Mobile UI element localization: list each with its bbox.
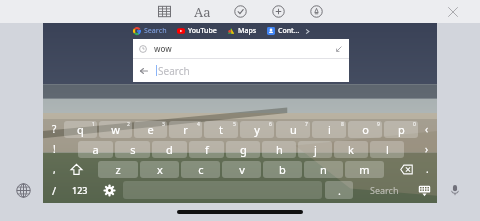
button[interactable]: j: [298, 141, 332, 158]
button[interactable]: o: [348, 121, 382, 138]
staticText: Search: [158, 64, 190, 78]
button[interactable]: Checklist: [227, 0, 253, 23]
button[interactable]: x: [140, 161, 179, 178]
staticText: d: [166, 142, 173, 157]
button[interactable]: d: [152, 141, 187, 158]
staticText: l: [386, 142, 389, 157]
button[interactable]: Close: [442, 1, 464, 23]
button[interactable]: /: [45, 179, 63, 201]
staticText: j: [314, 142, 317, 157]
staticText: ›: [425, 142, 429, 156]
button[interactable]: Maps: [227, 26, 257, 36]
staticText: k: [348, 142, 354, 157]
button[interactable]: Search: [133, 59, 349, 82]
button[interactable]: b: [263, 161, 302, 178]
button[interactable]: Markup: [303, 0, 329, 23]
staticText: n: [320, 162, 327, 177]
staticText: Maps: [238, 26, 257, 36]
button[interactable]: ›: [419, 139, 435, 159]
button[interactable]: Settings: [97, 179, 121, 201]
button[interactable]: .: [419, 159, 435, 179]
button[interactable]: n: [304, 161, 343, 178]
staticText: YouTube: [188, 26, 217, 36]
button[interactable]: Add: [265, 0, 291, 23]
button[interactable]: h: [262, 141, 296, 158]
staticText: /: [52, 183, 57, 198]
button[interactable]: ‹: [419, 119, 435, 139]
staticText: .: [338, 183, 341, 198]
button[interactable]: Table: [151, 0, 177, 23]
staticText: Search: [144, 26, 167, 36]
staticText: .: [426, 162, 429, 176]
button[interactable]: !: [45, 139, 63, 159]
staticText: 2: [127, 121, 130, 128]
button[interactable]: Dictate: [444, 179, 466, 201]
staticText: c: [198, 162, 204, 177]
button[interactable]: l: [370, 141, 404, 158]
button[interactable]: s: [115, 141, 150, 158]
staticText: 4: [197, 121, 200, 128]
staticText: Cont...: [278, 26, 300, 36]
button[interactable]: Shift: [63, 159, 89, 179]
staticText: Aa: [194, 3, 211, 21]
button[interactable]: y: [240, 121, 274, 138]
button[interactable]: .: [325, 181, 353, 199]
button[interactable]: Backspace: [393, 159, 419, 179]
button[interactable]: r: [169, 121, 202, 138]
staticText: 0: [413, 121, 416, 128]
button[interactable]: e: [134, 121, 167, 138]
button[interactable]: a: [78, 141, 113, 158]
staticText: x: [157, 162, 163, 177]
staticText: ?: [52, 122, 57, 136]
button[interactable]: 123: [63, 179, 97, 201]
staticText: 5: [233, 121, 236, 128]
button[interactable]: Cont...: [267, 26, 300, 36]
button[interactable]: w: [99, 121, 132, 138]
staticText: w: [111, 122, 120, 137]
button[interactable]: p: [384, 121, 418, 138]
button[interactable]: Aa: [189, 0, 215, 23]
button[interactable]: k: [334, 141, 368, 158]
button[interactable]: Search: [133, 26, 167, 36]
staticText: ,: [53, 162, 56, 176]
staticText: q: [77, 122, 84, 137]
staticText: 123: [72, 184, 88, 196]
button[interactable]: YouTube: [177, 26, 217, 36]
staticText: 7: [305, 121, 308, 128]
staticText: a: [92, 142, 99, 157]
staticText: ‹: [425, 122, 429, 136]
staticText: b: [279, 162, 286, 177]
staticText: f: [205, 142, 209, 157]
staticText: m: [359, 162, 370, 177]
button[interactable]: v: [222, 161, 261, 178]
staticText: p: [398, 122, 405, 137]
button[interactable]: z: [98, 161, 138, 178]
staticText: i: [328, 122, 331, 137]
button[interactable]: f: [189, 141, 224, 158]
staticText: u: [290, 122, 297, 137]
button[interactable]: g: [226, 141, 260, 158]
staticText: o: [362, 122, 369, 137]
button[interactable]: wow: [133, 39, 349, 58]
button[interactable]: Hide keyboard: [413, 179, 435, 201]
button[interactable]: c: [181, 161, 220, 178]
button[interactable]: q: [64, 121, 97, 138]
button[interactable]: Search: [355, 179, 413, 201]
staticText: 9: [377, 121, 380, 128]
staticText: z: [115, 162, 121, 177]
button[interactable]: ?: [45, 119, 63, 139]
button[interactable]: m: [345, 161, 384, 178]
staticText: r: [183, 122, 188, 137]
staticText: 1: [92, 121, 95, 128]
staticText: 3: [162, 121, 165, 128]
button[interactable]: t: [204, 121, 238, 138]
button[interactable]: u: [276, 121, 310, 138]
staticText: 8: [341, 121, 344, 128]
button[interactable]: Change language: [12, 179, 34, 201]
staticText: g: [240, 142, 247, 157]
button[interactable]: i: [312, 121, 346, 138]
button[interactable]: ,: [45, 159, 63, 179]
staticText: s: [130, 142, 136, 157]
staticText: !: [53, 142, 56, 156]
